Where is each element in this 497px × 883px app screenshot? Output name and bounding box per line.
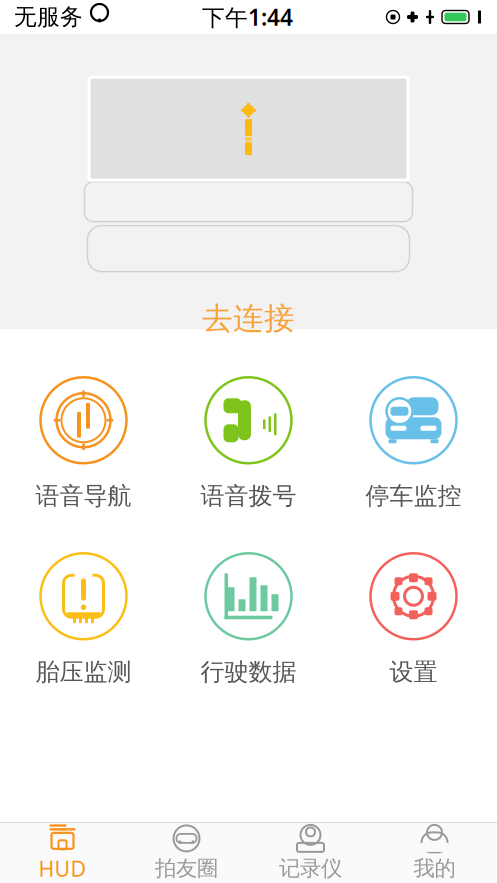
button[interactable]: 语音导航 bbox=[1, 377, 166, 509]
staticText: 胎压监测 bbox=[35, 657, 131, 687]
button[interactable]: 设置 bbox=[331, 553, 496, 685]
staticText: 语音导航 bbox=[35, 481, 131, 511]
button[interactable]: 记录仪 bbox=[248, 823, 372, 883]
staticText: 无服务 bbox=[14, 3, 83, 31]
button[interactable]: 语音拨号 bbox=[166, 377, 331, 509]
button[interactable]: HUD bbox=[0, 823, 124, 883]
staticText: 下午1:44 bbox=[202, 2, 293, 32]
button[interactable]: 拍友圈 bbox=[124, 823, 248, 883]
staticText: 语音拨号 bbox=[200, 481, 296, 511]
button[interactable]: 我的 bbox=[372, 823, 496, 883]
button[interactable]: 去连接 bbox=[176, 294, 321, 343]
staticText: 去连接 bbox=[202, 300, 295, 337]
button[interactable]: 停车监控 bbox=[331, 377, 496, 509]
staticText: 记录仪 bbox=[279, 855, 342, 882]
staticText: 停车监控 bbox=[365, 481, 461, 511]
button[interactable]: 胎压监测 bbox=[1, 553, 166, 685]
staticText: HUD bbox=[38, 854, 86, 883]
staticText: 设置 bbox=[389, 657, 437, 687]
staticText: 我的 bbox=[413, 855, 455, 882]
button[interactable]: 行驶数据 bbox=[166, 553, 331, 685]
staticText: 行驶数据 bbox=[200, 657, 296, 687]
staticText: 拍友圈 bbox=[155, 855, 218, 882]
